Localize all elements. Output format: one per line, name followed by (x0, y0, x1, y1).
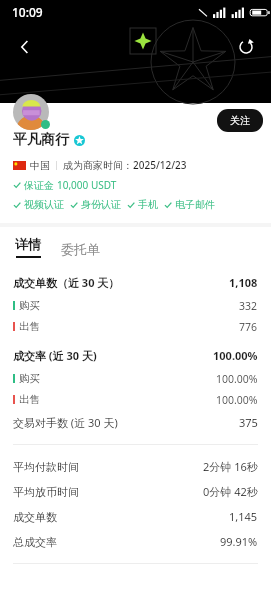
staticText: 中国 (30, 159, 50, 172)
staticText: 出售 (19, 393, 40, 406)
staticText: 成交率 (近 30 天) (13, 348, 97, 363)
staticText: 手机 (138, 198, 158, 211)
staticText: 身份认证 (81, 198, 121, 211)
staticText: 100.00% (216, 372, 258, 386)
staticText: 1,108 (229, 275, 258, 290)
staticText: 购买 (19, 372, 40, 385)
button[interactable]: Avatar (13, 94, 49, 130)
staticText: 电子邮件 (175, 198, 215, 211)
staticText: 1,145 (229, 509, 258, 524)
staticText: 776 (239, 320, 258, 334)
staticText: 出售 (19, 320, 40, 333)
staticText: 375 (239, 415, 258, 430)
staticText: 10:09 (12, 4, 43, 20)
staticText: 100.00% (213, 348, 258, 363)
staticText: 99.91% (220, 534, 258, 549)
staticText: 保证金 (24, 179, 54, 192)
button[interactable]: 委托单 (59, 240, 102, 258)
staticText: 交易对手数 (近 30 天) (13, 415, 118, 430)
staticText: 0分钟 42秒 (203, 484, 258, 499)
staticText: 成为商家时间：2025/12/23 (63, 158, 187, 172)
staticText: 332 (239, 299, 258, 313)
staticText: 总成交率 (13, 535, 57, 549)
staticText: 平均付款时间 (13, 460, 79, 474)
staticText: 委托单 (61, 241, 100, 257)
staticText: 平均放币时间 (13, 485, 79, 499)
button[interactable]: 详情 (13, 236, 43, 258)
staticText: 2分钟 16秒 (203, 459, 258, 474)
staticText: 成交单数（近 30 天） (13, 275, 120, 290)
staticText: 详情 (15, 236, 41, 252)
button[interactable]: 关注 (217, 109, 263, 132)
staticText: 100.00% (216, 393, 258, 407)
staticText: 10,000 USDT (57, 178, 117, 192)
button[interactable]: Refresh (229, 30, 263, 64)
staticText: 关注 (230, 114, 250, 127)
staticText: 平凡商行 (13, 131, 69, 149)
staticText: 成交单数 (13, 510, 57, 524)
staticText: 视频认证 (24, 198, 64, 211)
button[interactable]: Back (8, 30, 42, 64)
staticText: 购买 (19, 299, 40, 312)
